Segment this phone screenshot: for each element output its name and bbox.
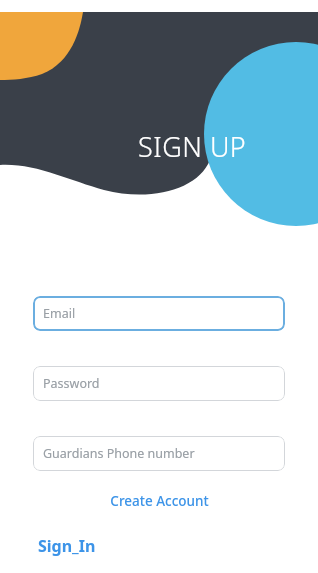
staticText: Password [43, 375, 100, 392]
button[interactable]: Password [33, 366, 285, 401]
staticText: Email [43, 305, 76, 322]
button[interactable]: Guardians Phone number [33, 436, 285, 471]
staticText: SIGN UP [138, 128, 247, 165]
staticText: Create Account [110, 492, 209, 510]
button[interactable]: Email [33, 296, 285, 331]
staticText: Guardians Phone number [43, 445, 195, 462]
button[interactable]: Create Account [33, 489, 285, 513]
button[interactable]: Sign_In [38, 535, 96, 557]
staticText: Sign_In [38, 535, 96, 557]
